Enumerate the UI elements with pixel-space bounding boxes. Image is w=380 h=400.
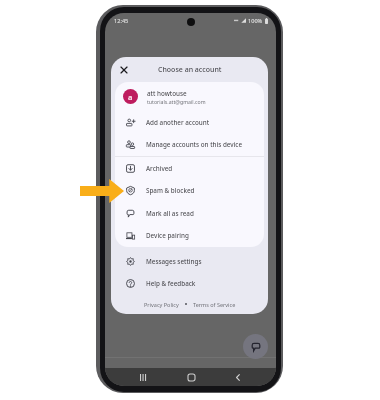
button[interactable]: Spam & blocked bbox=[115, 179, 264, 202]
staticText: Add another account bbox=[146, 118, 210, 127]
button[interactable]: Messages settings bbox=[111, 250, 268, 272]
staticText: Manage accounts on this device bbox=[146, 140, 243, 149]
button[interactable]: Mark all as read bbox=[115, 202, 264, 224]
staticText: Device pairing bbox=[146, 231, 189, 240]
button[interactable]: Help & feedback bbox=[111, 272, 268, 294]
button[interactable]: Start chat bbox=[243, 334, 268, 359]
staticText: Terms of Service bbox=[193, 301, 236, 308]
staticText: 100% bbox=[248, 17, 263, 25]
staticText: Choose an account bbox=[158, 65, 222, 75]
button[interactable]: Close bbox=[111, 57, 136, 82]
button[interactable]: Terms of Service bbox=[193, 301, 236, 308]
staticText: tutorials.att@gmail.com bbox=[147, 98, 206, 105]
button[interactable]: Back bbox=[229, 368, 247, 386]
button[interactable]: Home bbox=[182, 368, 200, 386]
staticText: Archived bbox=[146, 164, 173, 173]
staticText: Help & feedback bbox=[146, 279, 196, 288]
button[interactable]: Archived bbox=[115, 157, 264, 179]
button[interactable]: Device pairing bbox=[115, 224, 264, 247]
button[interactable]: Recents bbox=[134, 368, 152, 386]
staticText: Mark all as read bbox=[146, 209, 194, 218]
staticText: Privacy Policy bbox=[144, 301, 179, 308]
button[interactable]: Privacy Policy bbox=[144, 301, 179, 308]
staticText: Messages settings bbox=[146, 257, 202, 266]
staticText: 12:45 bbox=[114, 17, 129, 25]
button[interactable]: Add another account bbox=[115, 111, 264, 133]
button[interactable]: a bbox=[115, 82, 264, 111]
staticText: a bbox=[128, 92, 133, 102]
button[interactable]: Manage accounts on this device bbox=[115, 133, 264, 156]
staticText: att howtouse bbox=[147, 89, 187, 98]
staticText: Spam & blocked bbox=[146, 186, 195, 195]
